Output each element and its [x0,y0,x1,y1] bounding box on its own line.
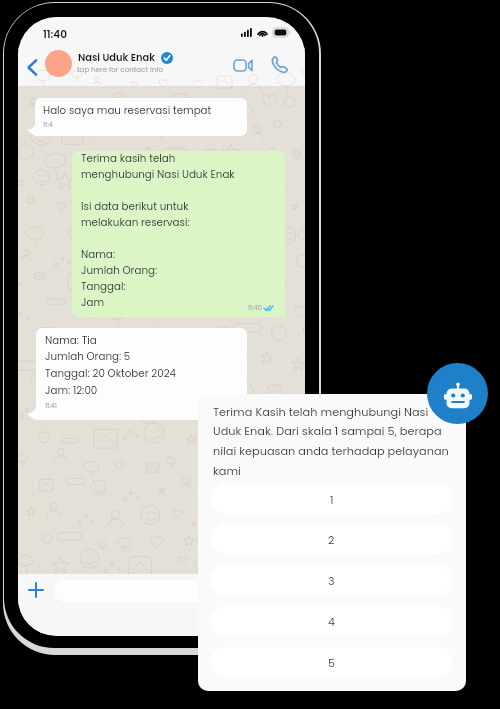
staticText: 3 [328,573,335,588]
staticText: 11:41 [45,401,57,410]
staticText: tap here for contact info [77,65,164,75]
button[interactable]: Chat bot [427,363,488,424]
staticText: 1 [330,492,334,507]
button[interactable]: Back [19,54,45,80]
staticText: Nama: Tia Jumlah Orang: 5 Tanggal: 20 Ok… [45,333,177,398]
button[interactable]: Call [266,51,292,77]
button[interactable]: 5 [211,647,452,677]
staticText: Terima kasih telah menghubungi Nasi Uduk… [81,151,235,309]
button[interactable]: 2 [211,524,452,554]
staticText: Nasi Uduk Enak [78,51,156,65]
staticText: 2 [328,532,335,547]
button[interactable]: Attach [24,578,48,602]
staticText: 11:40 [248,303,262,312]
staticText: 11:4 [43,120,53,129]
staticText: 11:40 [43,27,68,42]
button[interactable]: 3 [211,565,452,595]
staticText: 5 [328,655,335,670]
staticText: Terima Kasih telah menghubungi Nasi Uduk… [213,404,449,479]
staticText: 4 [328,614,335,629]
button[interactable]: 4 [211,606,452,636]
staticText: Halo saya mau reservasi tempat [43,103,212,117]
button[interactable]: 1 [211,484,452,514]
button[interactable]: Video call [230,52,256,78]
